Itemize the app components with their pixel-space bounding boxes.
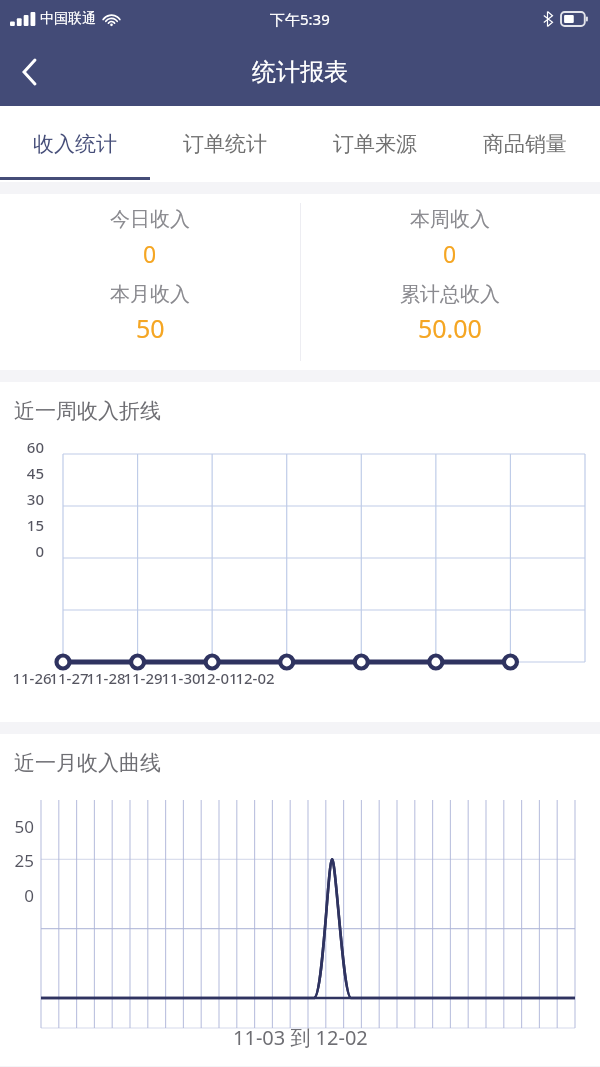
staticText: 25	[0, 849, 34, 872]
staticText: 12-01	[190, 668, 246, 688]
staticText: 订单来源	[333, 131, 417, 157]
staticText: 累计总收入	[400, 282, 500, 307]
staticText: 商品销量	[483, 131, 567, 157]
staticText: 0	[143, 238, 157, 269]
staticText: 15	[0, 515, 44, 535]
staticText: 本周收入	[410, 207, 490, 232]
staticText: 11-28	[78, 668, 134, 688]
button[interactable]: 订单统计	[150, 106, 300, 182]
staticText: 0	[0, 541, 44, 561]
button[interactable]: 订单来源	[300, 106, 450, 182]
staticText: 11-26	[4, 668, 60, 688]
staticText: 11-27	[41, 668, 97, 688]
staticText: 收入统计	[33, 131, 117, 157]
staticText: 50	[136, 311, 165, 345]
button[interactable]: 商品销量	[450, 106, 600, 182]
staticText: 近一月收入曲线	[14, 750, 161, 776]
staticText: 60	[0, 437, 44, 457]
staticText: 近一周收入折线	[14, 398, 161, 424]
button[interactable]: Back	[0, 43, 58, 101]
staticText: 0	[443, 238, 457, 269]
staticText: 50.00	[418, 311, 482, 345]
staticText: 本月收入	[110, 282, 190, 307]
staticText: 11-29	[115, 668, 171, 688]
staticText: 50	[0, 815, 34, 838]
staticText: 今日收入	[110, 207, 190, 232]
staticText: 下午5:39	[270, 9, 330, 29]
staticText: 30	[0, 489, 44, 509]
button[interactable]: 收入统计	[0, 106, 150, 182]
staticText: 45	[0, 463, 44, 483]
staticText: 12-02	[227, 668, 283, 688]
staticText: 订单统计	[183, 131, 267, 157]
staticText: 11-30	[153, 668, 209, 688]
staticText: 统计报表	[252, 57, 348, 87]
staticText: 0	[0, 884, 34, 907]
staticText: 中国联通	[40, 10, 96, 28]
staticText: 11-03 到 12-02	[233, 1024, 368, 1051]
